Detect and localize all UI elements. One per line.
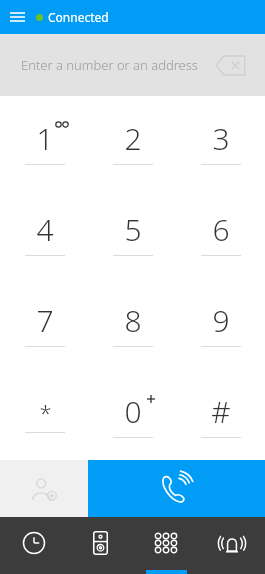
staticText: 1 — [36, 118, 54, 159]
staticText: 9 — [212, 300, 230, 341]
staticText: 8 — [124, 300, 142, 341]
button[interactable]: Call — [88, 460, 265, 517]
button[interactable]: 7 — [0, 278, 89, 369]
button[interactable]: 5 — [89, 187, 177, 278]
staticText: 3 — [212, 118, 230, 159]
button[interactable]: 4 — [0, 187, 89, 278]
staticText: * — [39, 397, 52, 427]
button[interactable]: Add contact — [0, 460, 88, 517]
button[interactable]: Alarm — [199, 517, 265, 574]
button[interactable]: 8 — [89, 278, 177, 369]
button[interactable]: 6 — [177, 187, 265, 278]
staticText: Connected — [48, 9, 109, 25]
button[interactable]: 3 — [177, 96, 265, 187]
staticText: 0 — [124, 391, 142, 432]
button[interactable]: Menu — [0, 0, 34, 34]
staticText: 6 — [212, 209, 230, 250]
button[interactable]: Recent calls — [0, 517, 67, 574]
button[interactable]: Enter a number or an address — [21, 56, 198, 74]
button[interactable]: Backspace — [209, 50, 253, 80]
staticText: 7 — [36, 300, 54, 341]
button[interactable]: Keypad — [133, 517, 199, 574]
button[interactable]: Connected — [36, 9, 109, 25]
staticText: 2 — [124, 118, 142, 159]
button[interactable]: Door station — [67, 517, 133, 574]
button[interactable]: # — [177, 369, 265, 460]
staticText: 5 — [124, 209, 142, 250]
staticText: 4 — [36, 209, 54, 250]
button[interactable]: 2 — [89, 96, 177, 187]
staticText: # — [211, 391, 231, 432]
button[interactable]: * — [0, 369, 89, 460]
button[interactable]: 0 — [89, 369, 177, 460]
button[interactable]: 9 — [177, 278, 265, 369]
button[interactable]: 1 — [0, 96, 89, 187]
